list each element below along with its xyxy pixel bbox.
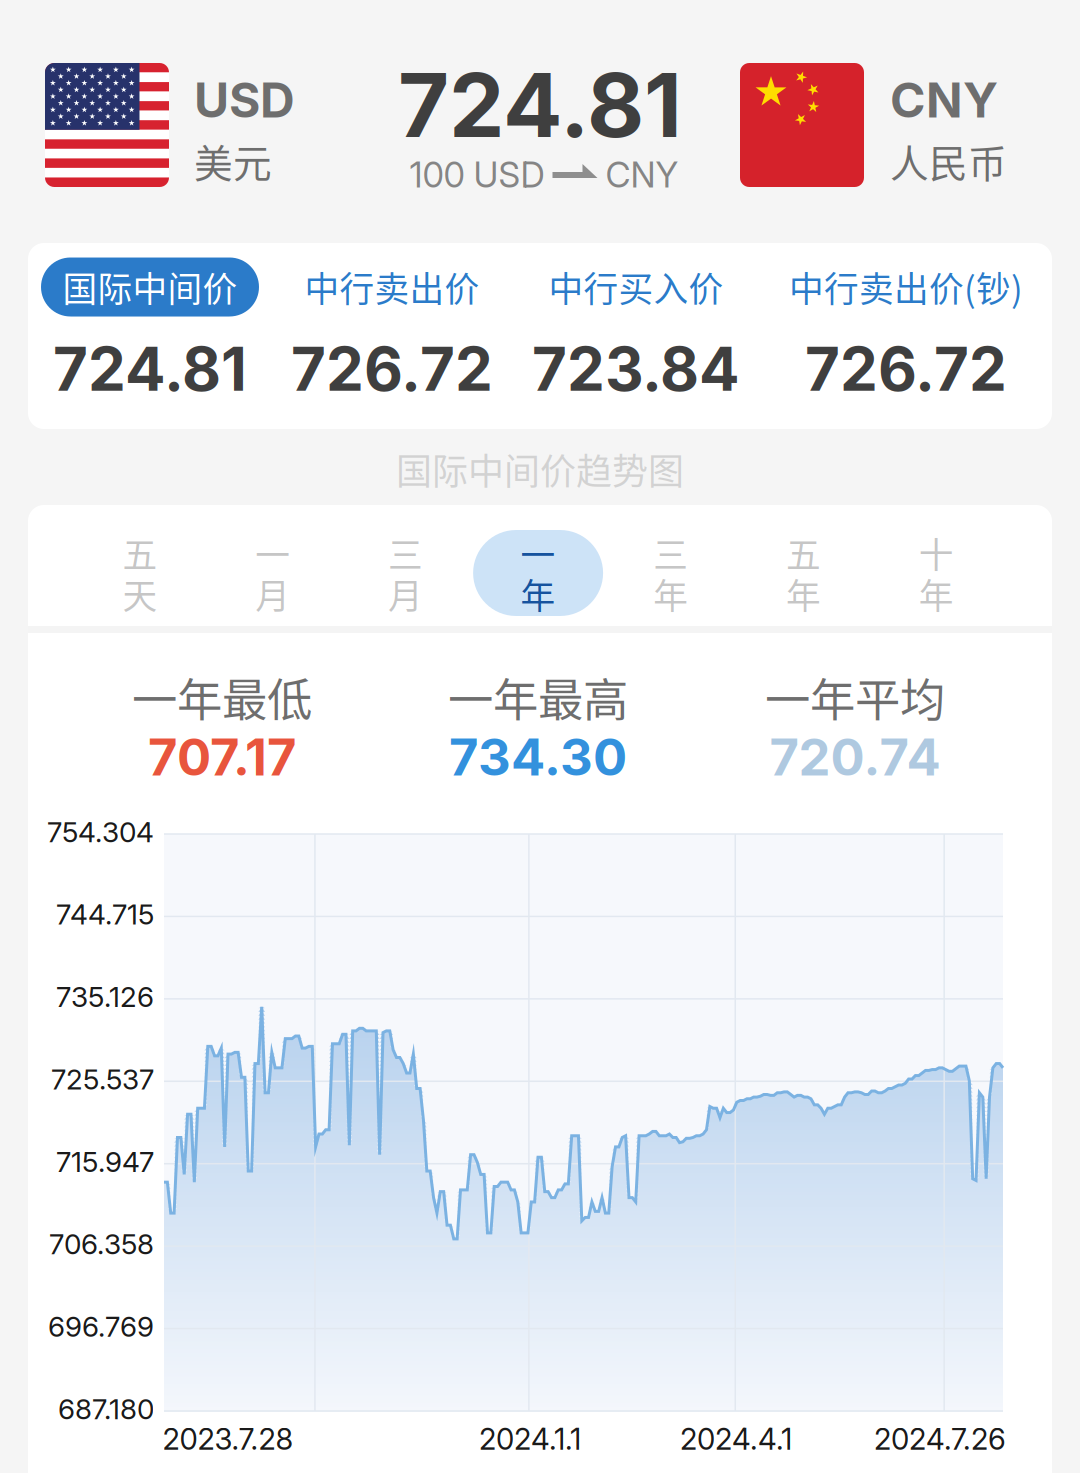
staticText: 一年最低: [132, 664, 312, 730]
button[interactable]: 一: [473, 530, 603, 616]
button[interactable]: 十: [871, 530, 1001, 616]
staticText: 中行买入价: [548, 262, 723, 312]
staticText: 735.126: [56, 980, 154, 1014]
staticText: 724.81: [398, 52, 682, 158]
staticText: 726.72: [805, 333, 1007, 405]
button[interactable]: 五: [75, 530, 205, 616]
staticText: 年: [786, 569, 821, 619]
button[interactable]: 三: [340, 530, 470, 616]
staticText: 696.769: [48, 1310, 154, 1343]
staticText: 100 USD: [409, 154, 544, 196]
staticText: 一: [255, 528, 290, 578]
staticText: 706.358: [49, 1227, 154, 1261]
staticText: 726.72: [291, 333, 493, 405]
staticText: 723.84: [532, 333, 740, 405]
staticText: 三: [653, 528, 688, 578]
staticText: 2024.1.1: [479, 1421, 581, 1457]
staticText: 中行卖出价: [304, 262, 479, 312]
staticText: 十: [919, 528, 954, 578]
staticText: CNY: [605, 154, 678, 196]
button[interactable]: 国际中间价: [41, 257, 259, 316]
staticText: 年: [653, 569, 688, 619]
staticText: 中行卖出价(钞): [789, 262, 1023, 312]
staticText: 715.947: [56, 1145, 154, 1179]
staticText: 国际中间价趋势图: [396, 443, 684, 495]
staticText: 2023.7.28: [162, 1421, 293, 1457]
button[interactable]: 中行卖出价(钞): [781, 257, 1031, 316]
button[interactable]: 中行买入价: [511, 257, 761, 316]
staticText: 2024.4.1: [680, 1421, 792, 1457]
button[interactable]: 一: [208, 530, 338, 616]
staticText: 美元: [194, 133, 272, 189]
staticText: 一年最高: [448, 664, 628, 730]
staticText: 一年平均: [765, 664, 945, 730]
staticText: 五: [122, 528, 157, 578]
button[interactable]: 三: [606, 530, 736, 616]
staticText: 三: [388, 528, 423, 578]
staticText: 744.715: [56, 897, 154, 931]
staticText: 2024.7.26: [874, 1421, 1006, 1457]
staticText: 一: [521, 528, 556, 578]
staticText: 五: [786, 528, 821, 578]
staticText: 年: [919, 569, 954, 619]
staticText: 国际中间价: [62, 262, 237, 312]
staticText: 724.81: [53, 333, 247, 405]
staticText: 687.180: [58, 1392, 154, 1426]
staticText: 754.304: [47, 815, 154, 849]
staticText: USD: [194, 71, 295, 129]
staticText: 天: [122, 569, 157, 619]
staticText: 月: [388, 569, 423, 619]
staticText: 725.537: [51, 1062, 154, 1096]
staticText: CNY: [890, 71, 998, 129]
button[interactable]: 中行卖出价: [267, 257, 517, 316]
button[interactable]: 五: [738, 530, 868, 616]
staticText: 720.74: [769, 726, 940, 788]
staticText: 月: [255, 569, 290, 619]
staticText: 年: [521, 569, 556, 619]
staticText: 人民币: [890, 133, 1007, 189]
staticText: 734.30: [449, 726, 627, 788]
staticText: 707.17: [148, 726, 296, 788]
